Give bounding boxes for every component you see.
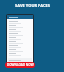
staticText: SAVE YOUR FACES <box>15 3 50 8</box>
staticText: DOWNLOAD NOW <box>7 63 34 67</box>
button[interactable] <box>8 58 32 63</box>
button[interactable]: DOWNLOAD NOW <box>5 62 35 68</box>
